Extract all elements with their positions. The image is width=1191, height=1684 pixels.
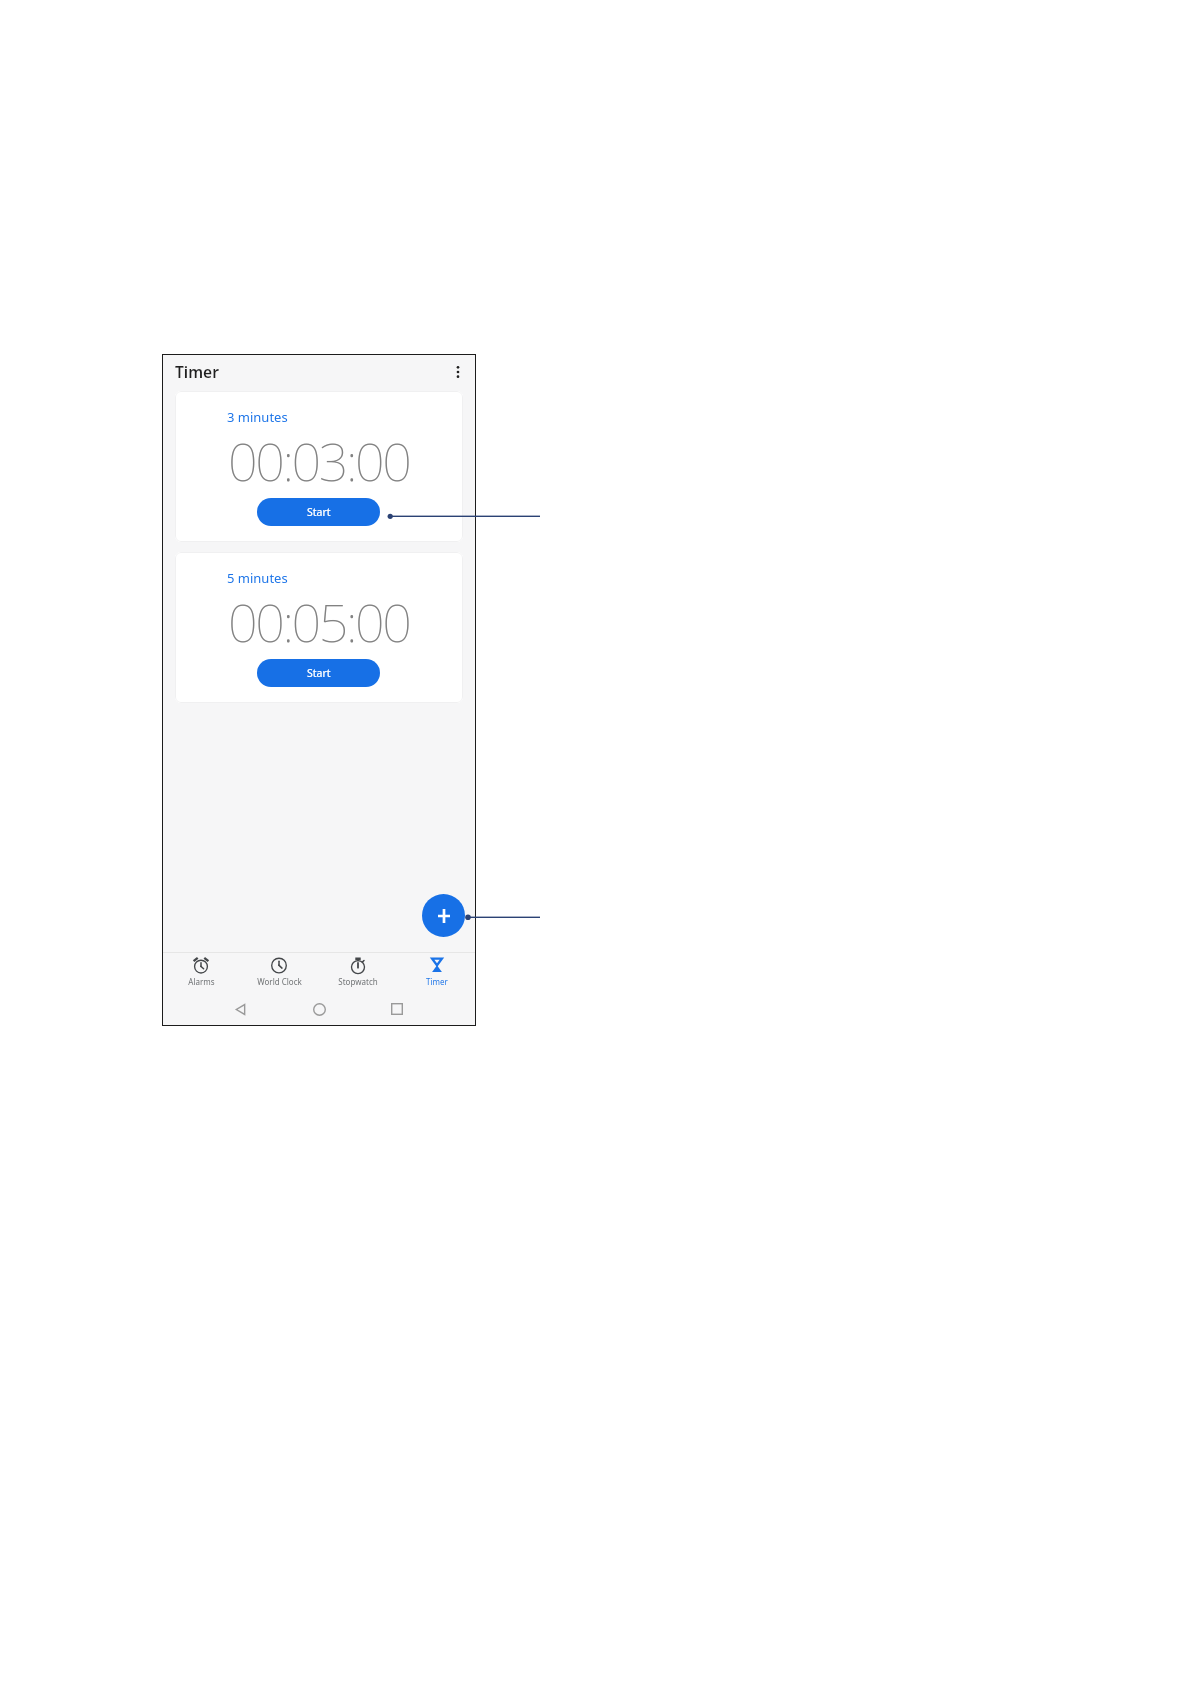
button[interactable]: 5 minutes: [175, 552, 463, 703]
staticText: Start: [307, 666, 331, 680]
staticText: Stopwatch: [338, 976, 378, 987]
button[interactable]: World Clock: [240, 953, 318, 993]
staticText: Timer: [175, 361, 219, 382]
staticText: 5 minutes: [227, 569, 288, 587]
staticText: Alarms: [188, 976, 215, 987]
button[interactable]: Start: [257, 659, 380, 687]
button[interactable]: Add timer: [422, 894, 465, 937]
staticText: World Clock: [257, 976, 302, 987]
button[interactable]: Start: [257, 498, 380, 526]
staticText: 00:03:00: [228, 425, 410, 496]
button[interactable]: 3 minutes: [175, 391, 463, 542]
button[interactable]: Home: [306, 996, 332, 1022]
button[interactable]: Recent apps: [384, 996, 410, 1022]
button[interactable]: More options: [446, 360, 470, 384]
staticText: 3 minutes: [227, 408, 288, 426]
button[interactable]: Stopwatch: [318, 953, 397, 993]
button[interactable]: Timer: [397, 953, 476, 993]
staticText: 00:05:00: [228, 586, 410, 657]
button[interactable]: Alarms: [162, 953, 240, 993]
staticText: Timer: [426, 976, 448, 987]
button[interactable]: Back: [227, 996, 253, 1022]
staticText: Start: [307, 505, 331, 519]
